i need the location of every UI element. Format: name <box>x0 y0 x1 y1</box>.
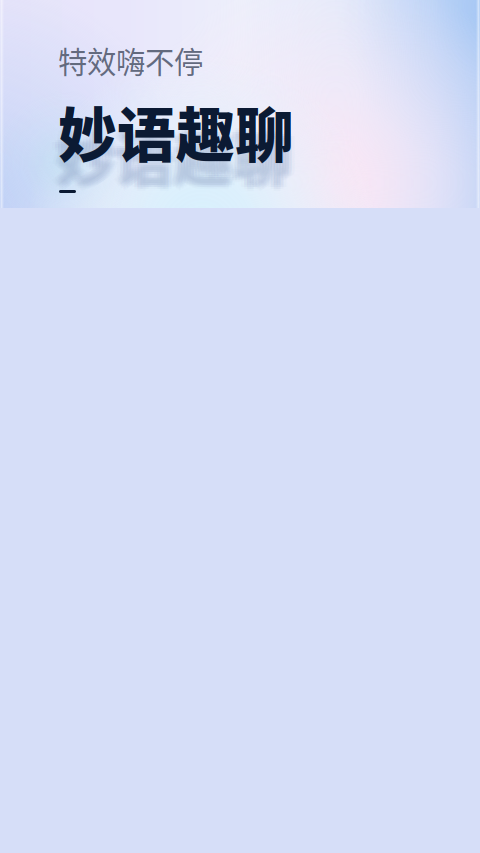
staticText: 妙语趣聊 <box>59 111 295 196</box>
staticText: 妙语趣聊 <box>56 109 292 194</box>
staticText: 特效嗨不停 <box>58 39 203 81</box>
staticText: 妙语趣聊 <box>59 115 295 200</box>
staticText: 妙语趣聊 <box>56 111 292 196</box>
staticText: 妙语趣聊 <box>53 115 289 200</box>
staticText: 妙语趣聊 <box>53 111 289 196</box>
staticText: 妙语趣聊 <box>56 113 292 198</box>
staticText: 妙语趣聊 <box>56 115 292 200</box>
staticText: 妙语趣聊 <box>50 113 286 198</box>
staticText: 妙语趣聊 <box>58 89 294 174</box>
staticText: 妙语趣聊 <box>59 113 295 198</box>
staticText: 妙语趣聊 <box>56 117 292 202</box>
staticText: 妙语趣聊 <box>53 113 289 198</box>
staticText: 妙语趣聊 <box>62 113 298 198</box>
